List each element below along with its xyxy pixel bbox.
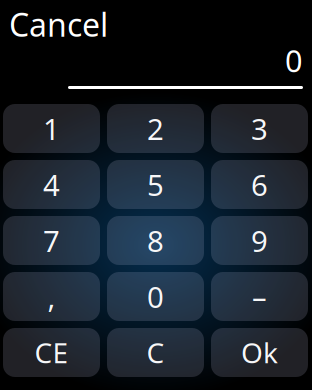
staticText: 5	[147, 165, 164, 204]
button[interactable]: Clear entry	[3, 328, 100, 377]
staticText: C	[146, 334, 164, 371]
staticText: CE	[34, 334, 68, 371]
staticText: 3	[251, 109, 268, 148]
staticText: 1	[43, 109, 60, 148]
button[interactable]: Cancel	[0, 0, 124, 51]
button[interactable]: 4	[3, 160, 100, 209]
button[interactable]: 8	[107, 216, 204, 265]
button[interactable]: Clear	[107, 328, 204, 377]
button[interactable]: Ok	[211, 328, 308, 377]
button[interactable]: 5	[107, 160, 204, 209]
staticText: 6	[251, 165, 268, 204]
button[interactable]: 6	[211, 160, 308, 209]
staticText: 8	[147, 221, 164, 260]
staticText: Cancel	[9, 3, 108, 45]
button[interactable]: 1	[3, 104, 100, 153]
button[interactable]: 7	[3, 216, 100, 265]
staticText: 2	[147, 109, 164, 148]
staticText: 7	[43, 221, 60, 260]
button[interactable]: Minus	[211, 272, 308, 321]
staticText: 0	[147, 277, 164, 316]
button[interactable]: 9	[211, 216, 308, 265]
button[interactable]: 2	[107, 104, 204, 153]
button[interactable]: Decimal separator	[3, 272, 100, 321]
button[interactable]: 0	[107, 272, 204, 321]
staticText: 4	[43, 165, 60, 204]
button[interactable]: 3	[211, 104, 308, 153]
staticText: 9	[251, 221, 268, 260]
staticText: Ok	[241, 334, 278, 371]
staticText: –	[252, 277, 267, 316]
staticText: 0	[285, 40, 303, 81]
staticText: ,	[47, 277, 55, 316]
